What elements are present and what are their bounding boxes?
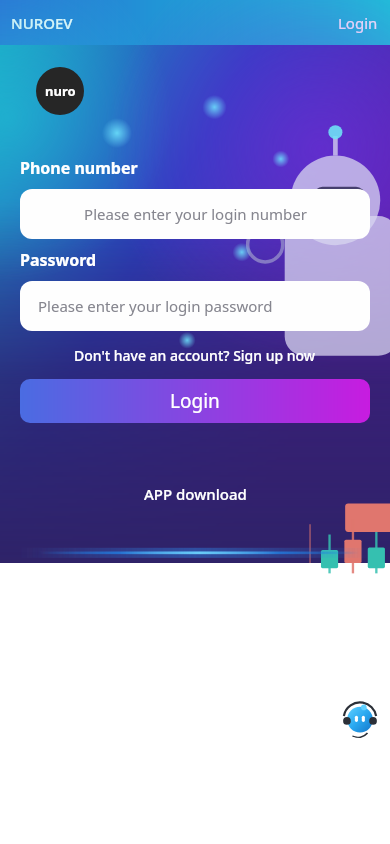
staticText: Password [20,249,97,271]
button[interactable]: Please enter your login number [20,189,370,239]
staticText: Login [170,388,220,414]
staticText: Please enter your login number [84,204,307,224]
button[interactable]: Please enter your login password [20,281,370,331]
staticText: Please enter your login password [38,296,273,316]
staticText: Don't have an account? Sign up now [74,346,316,365]
button[interactable]: Login [20,379,370,423]
staticText: NUROEV [11,13,73,33]
staticText: Login [338,13,378,33]
button[interactable]: NURO logo [36,67,84,115]
staticText: APP download [144,484,247,504]
button[interactable]: APP download [136,481,255,507]
button[interactable]: Customer support [340,698,380,738]
staticText: Phone number [20,157,138,179]
button[interactable]: Login [326,7,390,39]
staticText: nuro [45,82,76,100]
button[interactable]: Don't have an account? Sign up now [66,343,324,368]
